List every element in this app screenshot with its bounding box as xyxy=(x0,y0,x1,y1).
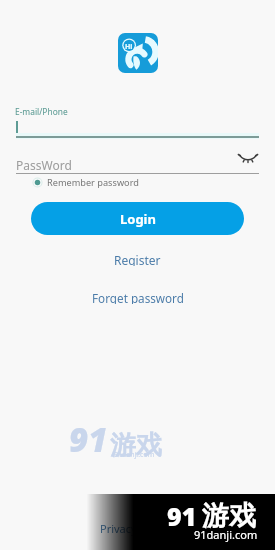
staticText: E-mail/Phone xyxy=(15,106,68,117)
staticText: Register xyxy=(114,252,161,266)
button[interactable]: Forget password xyxy=(0,290,275,304)
button[interactable]: Show password xyxy=(234,150,262,170)
staticText: PassWord xyxy=(16,157,72,173)
staticText: Remember password xyxy=(47,176,139,189)
button[interactable]: Remember password xyxy=(32,176,139,189)
staticText: Login xyxy=(120,210,156,228)
button[interactable]: Privacy xyxy=(100,519,137,537)
staticText: Privacy xyxy=(100,521,137,536)
staticText: 游戏 xyxy=(202,499,256,533)
staticText: Hi xyxy=(125,42,133,52)
staticText: 91danji.com xyxy=(114,450,155,460)
staticText: 游戏 xyxy=(110,429,162,462)
button[interactable]: Login xyxy=(31,202,244,235)
staticText: Forget password xyxy=(92,290,184,304)
staticText: 91danji.com xyxy=(194,527,258,542)
staticText: 91 xyxy=(167,499,197,533)
button[interactable]: Register xyxy=(0,252,275,266)
staticText: 91 xyxy=(69,417,108,462)
